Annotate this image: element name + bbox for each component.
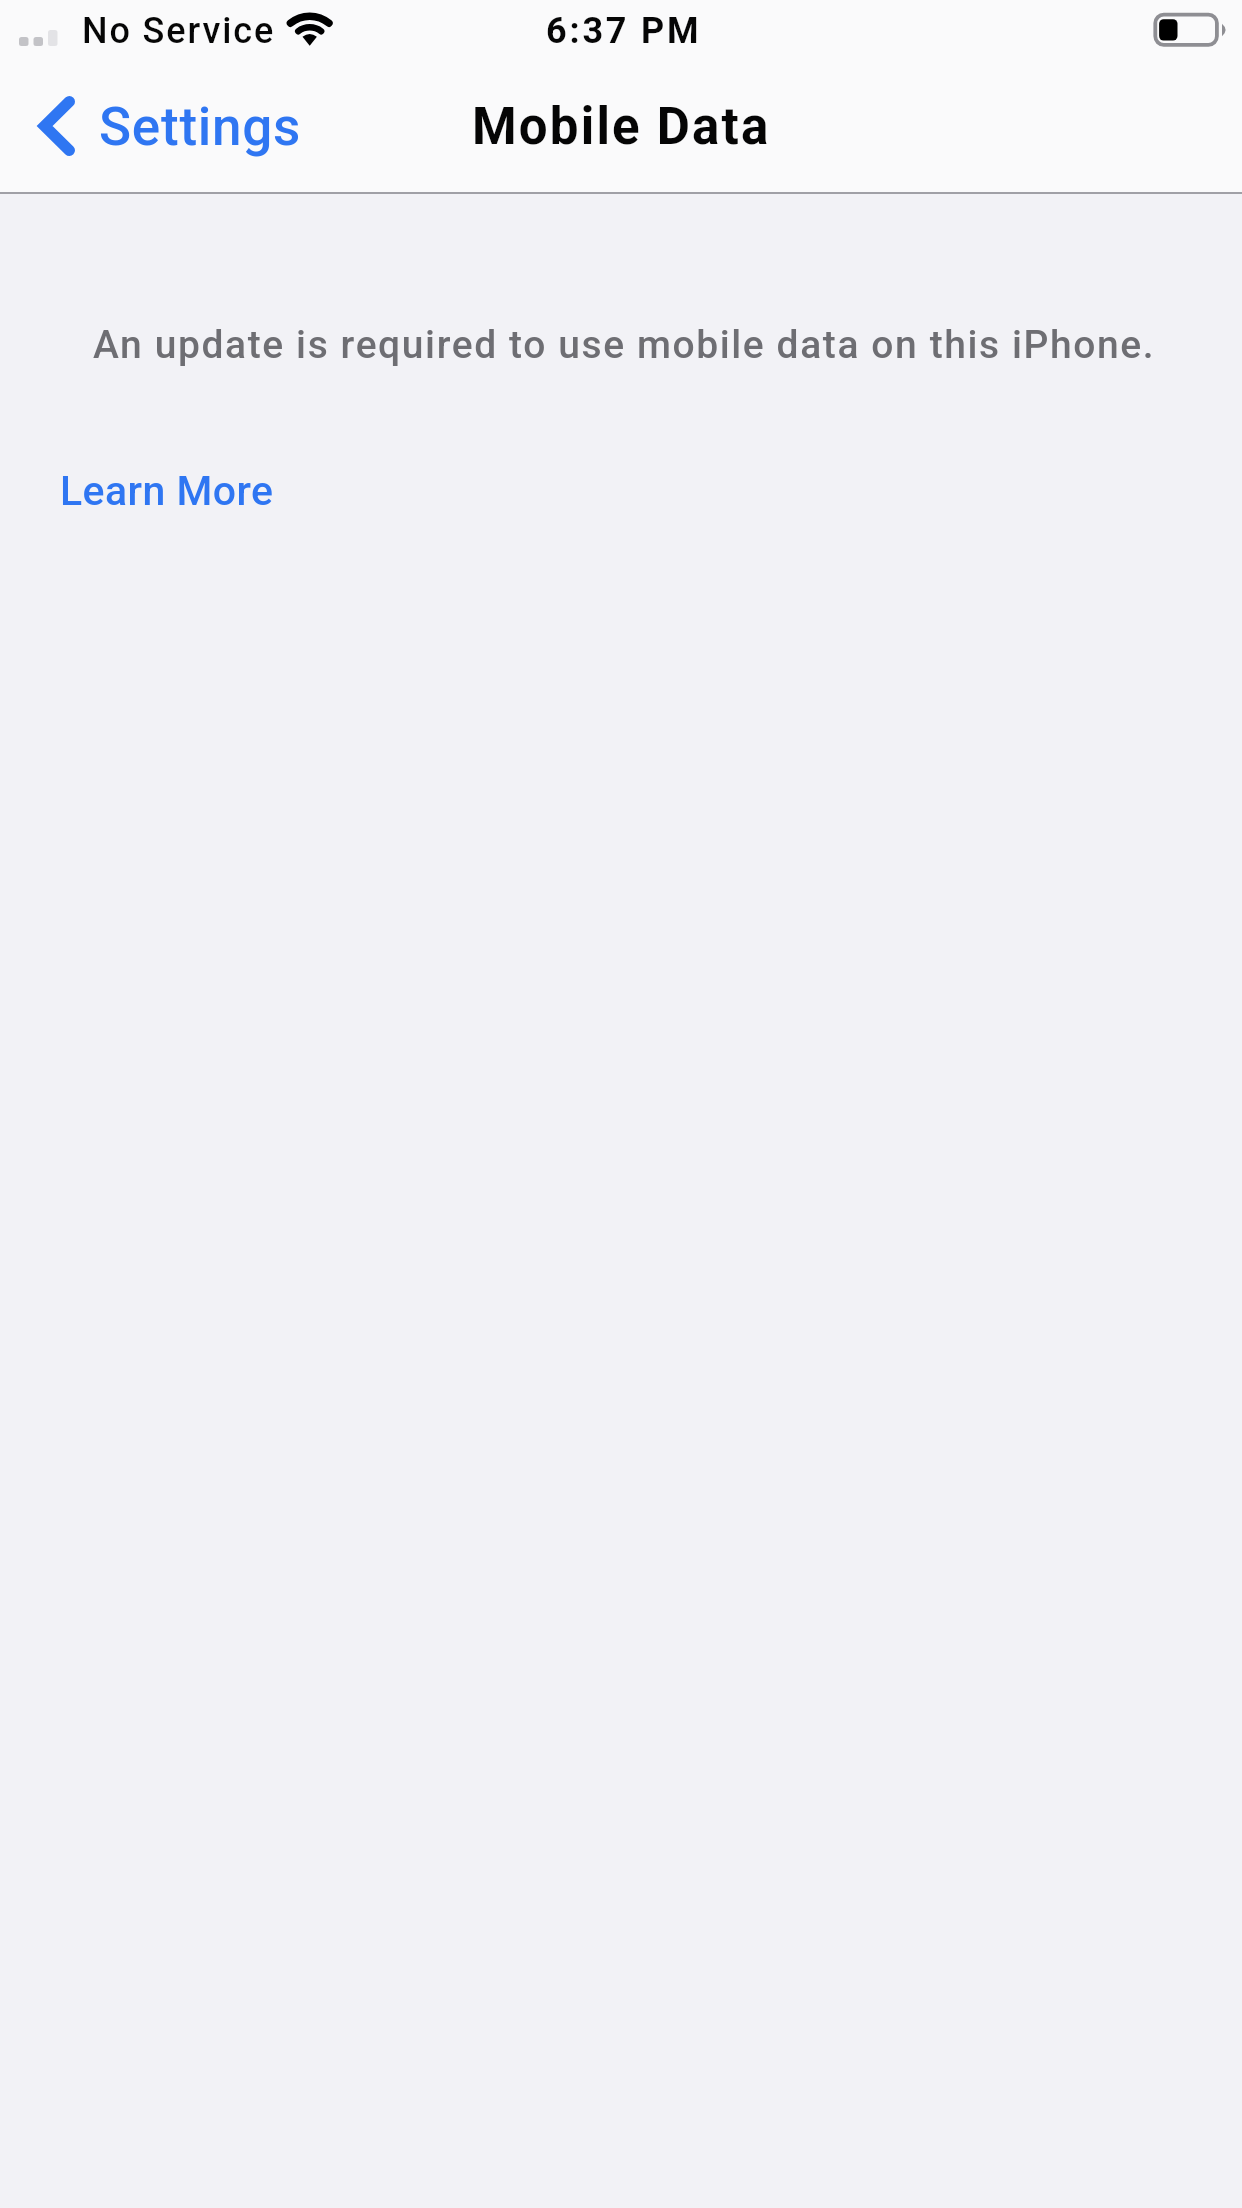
staticText: 6:37 PM: [546, 10, 702, 52]
staticText: Learn More: [60, 467, 274, 515]
staticText: Settings: [99, 96, 302, 158]
staticText: Mobile Data: [472, 97, 771, 157]
button[interactable]: Back to Settings: [24, 80, 314, 176]
staticText: An update is required to use mobile data…: [93, 322, 1156, 368]
staticText: No Service: [82, 10, 276, 52]
button[interactable]: Learn More: [40, 455, 290, 525]
